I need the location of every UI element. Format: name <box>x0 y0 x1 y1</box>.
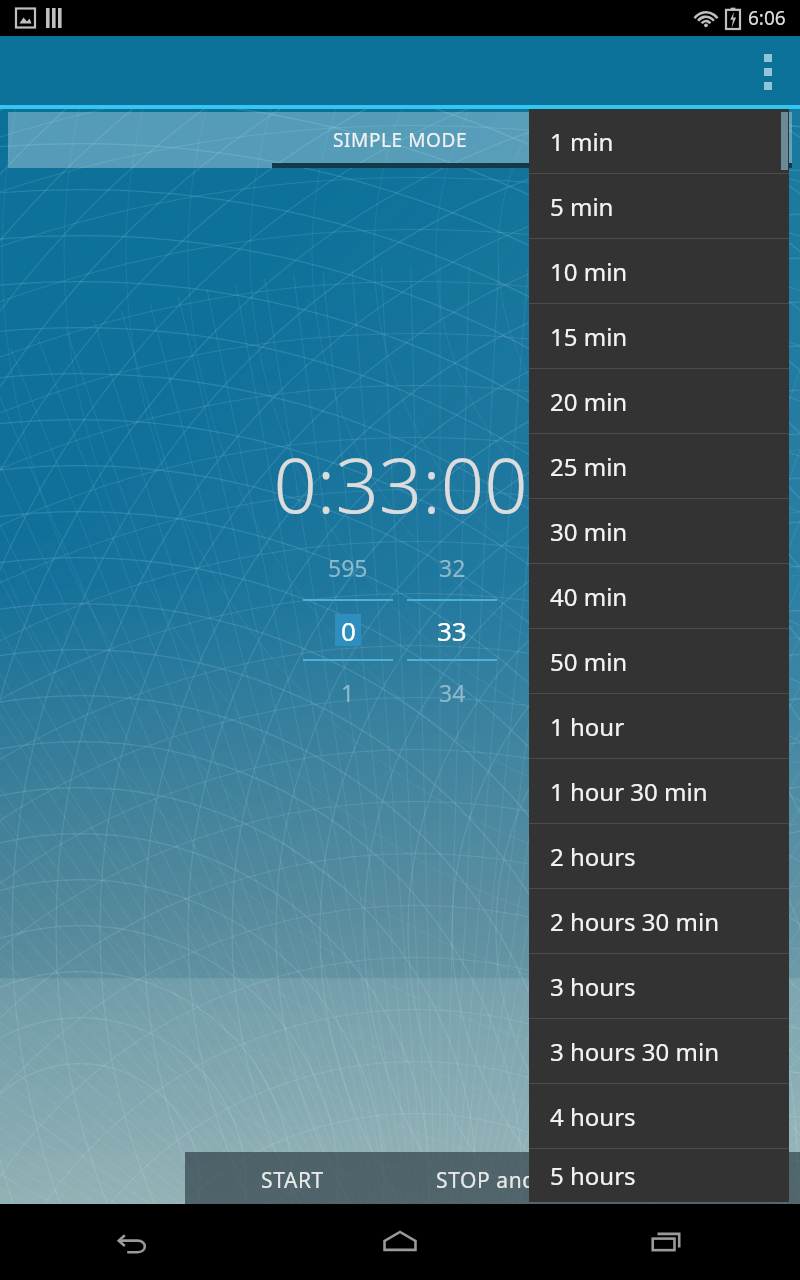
button[interactable]: More options <box>736 36 800 107</box>
staticText: 4 hours <box>550 1100 636 1133</box>
button[interactable]: 5 min <box>529 174 789 238</box>
button[interactable]: 3 hours <box>529 954 789 1018</box>
button[interactable]: 4 hours <box>529 1084 789 1148</box>
button[interactable]: 1 hour 30 min <box>529 759 789 823</box>
button[interactable]: 1 hour <box>529 694 789 758</box>
staticText: 40 min <box>550 580 628 613</box>
button[interactable]: 5 hours <box>529 1149 789 1202</box>
staticText: 50 min <box>550 645 628 678</box>
button[interactable]: Recent apps <box>533 1204 800 1280</box>
staticText: 3 hours 30 min <box>550 1035 719 1068</box>
staticText: 0 <box>341 613 356 648</box>
staticText: START <box>261 1166 324 1195</box>
button[interactable]: 2 hours 30 min <box>529 889 789 953</box>
button[interactable]: 15 min <box>529 304 789 368</box>
staticText: 10 min <box>550 255 628 288</box>
button[interactable]: 40 min <box>529 564 789 628</box>
button[interactable]: 32 <box>407 552 497 708</box>
staticText: 3 hours <box>550 970 636 1003</box>
button[interactable]: 2 hours <box>529 824 789 888</box>
staticText: 33 <box>437 613 467 648</box>
staticText: SIMPLE MODE <box>333 127 468 153</box>
staticText: 1 hour 30 min <box>550 775 708 808</box>
staticText: 5 min <box>550 190 614 223</box>
staticText: 32 <box>439 552 466 583</box>
button[interactable]: Home <box>266 1204 533 1280</box>
button[interactable]: 25 min <box>529 434 789 498</box>
staticText: 6:06 <box>748 5 786 31</box>
button[interactable]: Back <box>0 1204 266 1280</box>
staticText: 30 min <box>550 515 628 548</box>
button[interactable]: 20 min <box>529 369 789 433</box>
button[interactable]: 3 hours 30 min <box>529 1019 789 1083</box>
staticText: 2 hours <box>550 840 636 873</box>
staticText: 1 min <box>550 125 614 158</box>
button[interactable]: 10 min <box>529 239 789 303</box>
staticText: 20 min <box>550 385 628 418</box>
staticText: 1 <box>341 677 355 708</box>
button[interactable]: 50 min <box>529 629 789 693</box>
button[interactable]: STOP and RESET <box>400 1152 800 1208</box>
staticText: 0:33:00 <box>273 432 528 536</box>
button[interactable]: SIMPLE MODE <box>8 112 792 168</box>
staticText: 34 <box>439 677 466 708</box>
button[interactable]: 30 min <box>529 499 789 563</box>
staticText: STOP and RESET <box>436 1166 605 1195</box>
staticText: 1 hour <box>550 710 625 743</box>
button[interactable]: 595 <box>303 552 393 708</box>
staticText: 595 <box>328 552 368 583</box>
staticText: 5 hours <box>550 1159 636 1192</box>
staticText: 2 hours 30 min <box>550 905 719 938</box>
staticText: 25 min <box>550 450 628 483</box>
staticText: 15 min <box>550 320 628 353</box>
button[interactable]: START <box>185 1152 400 1208</box>
button[interactable]: 1 min <box>529 109 789 173</box>
